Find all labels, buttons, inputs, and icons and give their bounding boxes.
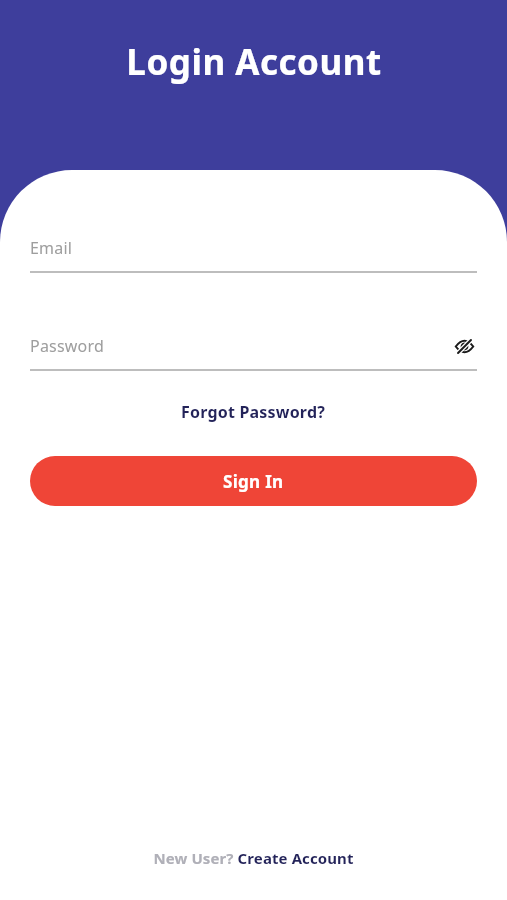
staticText: Email — [30, 237, 477, 259]
button[interactable]: Show password — [451, 333, 477, 359]
staticText: Forgot Password? — [181, 401, 326, 423]
button[interactable]: Email — [30, 233, 477, 273]
staticText: Sign In — [223, 470, 284, 493]
button[interactable]: Sign In — [30, 456, 477, 506]
button[interactable]: Password — [30, 331, 477, 371]
button[interactable]: Forgot Password? — [173, 397, 334, 427]
staticText: Login Account — [126, 38, 382, 86]
staticText: Password — [30, 335, 451, 357]
button[interactable]: New User? Create Account — [145, 844, 362, 872]
staticText: New User? Create Account — [153, 848, 354, 868]
